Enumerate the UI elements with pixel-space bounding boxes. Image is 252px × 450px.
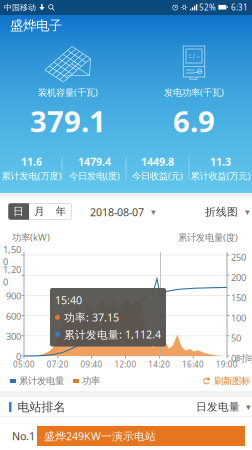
staticText: 900	[6, 290, 21, 302]
staticText: 0时间	[231, 352, 252, 364]
staticText: 今日发电(度)	[69, 170, 120, 182]
staticText: 今日收益(元)	[132, 170, 183, 182]
staticText: No.1	[12, 429, 35, 443]
button[interactable]: 日发电量	[196, 401, 251, 413]
staticText: 装机容量(千瓦)	[38, 86, 98, 98]
staticText: 盛烨249KW一演示电站	[44, 429, 156, 443]
staticText: 刷新图标	[214, 375, 250, 387]
staticText: 6:31	[231, 2, 248, 13]
staticText: 中国移动	[4, 3, 36, 12]
staticText: ▾	[245, 207, 250, 217]
button[interactable]: 年	[50, 203, 72, 220]
staticText: 52%	[199, 2, 216, 13]
staticText: 盛烨电子	[10, 17, 62, 34]
staticText: 累计发电量(度)	[178, 231, 238, 243]
staticText: 1479.4	[78, 154, 111, 169]
staticText: 11.6	[21, 154, 42, 169]
button[interactable]: 月	[29, 203, 50, 220]
staticText: 6.9	[173, 101, 215, 140]
staticText: 50	[231, 332, 241, 344]
staticText: 07:20	[47, 359, 69, 370]
staticText: 2018-08-07	[90, 205, 144, 219]
staticText: 累计发电(万度)	[1, 170, 61, 182]
staticText: 1,200	[3, 263, 21, 288]
staticText: 累计发电量	[19, 375, 64, 387]
staticText: 折线图	[205, 205, 238, 218]
staticText: ▾	[246, 402, 251, 412]
staticText: 0	[16, 350, 21, 363]
staticText: 100	[231, 312, 246, 324]
staticText: 功率: 37.15	[64, 310, 119, 324]
staticText: 200	[231, 271, 246, 284]
staticText: 月	[34, 205, 45, 218]
staticText: 600	[6, 310, 21, 322]
staticText: 累计发电量: 1,112.4	[64, 327, 161, 341]
staticText: 功率	[82, 375, 100, 387]
staticText: 09:40	[81, 359, 103, 370]
staticText: ▾	[151, 207, 156, 217]
staticText: 19:00	[216, 359, 238, 370]
staticText: 16:40	[182, 359, 204, 370]
staticText: 150	[231, 291, 246, 304]
staticText: 日发电量	[196, 400, 240, 413]
button[interactable]: 刷新图标	[203, 375, 250, 387]
staticText: 累计收益(万元)	[190, 170, 250, 182]
staticText: 日	[13, 205, 24, 218]
button[interactable]: 日	[8, 203, 29, 220]
button[interactable]: 2018-08-07	[90, 205, 156, 219]
staticText: 05:00	[13, 359, 35, 370]
staticText: 14:20	[148, 359, 170, 370]
staticText: 250	[231, 251, 246, 263]
staticText: 12:00	[114, 359, 136, 370]
staticText: 1,500	[3, 243, 21, 268]
button[interactable]: 折线图	[205, 205, 250, 219]
staticText: 1449.8	[141, 154, 174, 169]
staticText: 发电功率(千瓦)	[164, 86, 224, 98]
staticText: 379.1	[30, 101, 106, 140]
staticText: 电站排名	[17, 400, 65, 414]
staticText: 11.3	[210, 154, 231, 169]
staticText: 300	[6, 330, 21, 342]
staticText: 年	[55, 205, 66, 218]
staticText: 15:40	[55, 293, 82, 307]
staticText: 功率(kW)	[12, 231, 50, 243]
